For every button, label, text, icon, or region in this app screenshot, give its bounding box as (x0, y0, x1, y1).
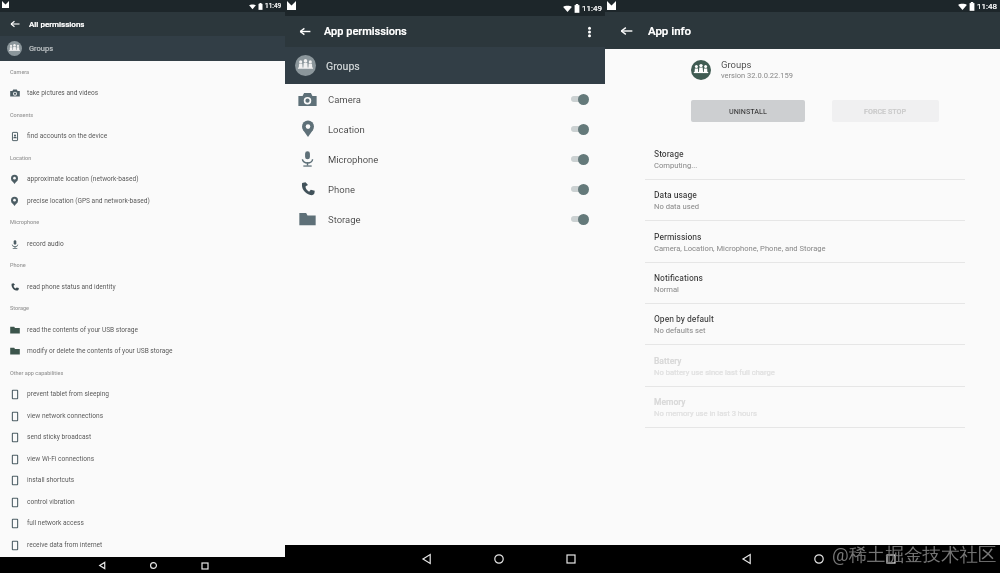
button[interactable]: Back (419, 551, 435, 567)
staticText: App permissions (324, 25, 407, 38)
staticText: Normal (654, 285, 679, 294)
button[interactable]: Home (491, 551, 507, 567)
staticText: Microphone (10, 219, 40, 225)
button[interactable]: record audio (0, 233, 285, 255)
staticText: Location (10, 155, 32, 161)
staticText: All permissions (29, 20, 85, 29)
staticText: read the contents of your USB storage (27, 326, 138, 334)
button[interactable]: Storage (285, 204, 605, 234)
button[interactable]: read phone status and identity (0, 276, 285, 298)
staticText: Phone (10, 262, 26, 268)
button[interactable]: Location (285, 114, 605, 144)
button[interactable]: Navigate up (605, 12, 648, 49)
staticText: Consents (10, 112, 34, 118)
button[interactable]: Battery (605, 346, 1000, 388)
button[interactable]: Navigate up (0, 12, 29, 36)
button[interactable]: Storage permission toggle (566, 208, 600, 230)
button[interactable]: Phone (285, 174, 605, 204)
button[interactable]: Home (148, 560, 159, 571)
staticText: FORCE STOP (864, 107, 907, 115)
staticText: UNINSTALL (729, 107, 767, 115)
staticText: Phone (328, 184, 355, 195)
button[interactable]: Storage (605, 139, 1000, 181)
staticText: Other app capabilities (10, 370, 64, 376)
staticText: Storage (328, 214, 361, 225)
staticText: Data usage (654, 190, 697, 200)
staticText: Microphone (328, 154, 379, 165)
button[interactable]: Back (739, 551, 755, 567)
staticText: Location (328, 124, 365, 135)
button[interactable]: Navigate up (285, 16, 324, 47)
staticText: 11:49 (265, 2, 282, 10)
button[interactable]: view Wi-Fi connections (0, 448, 285, 470)
button[interactable]: Navigate up (0, 12, 285, 36)
button[interactable]: Groups (285, 47, 605, 84)
button[interactable]: Back (97, 560, 108, 571)
button[interactable]: Recent apps (563, 551, 579, 567)
button[interactable]: Camera permission toggle (566, 88, 600, 110)
button[interactable]: prevent tablet from sleeping (0, 383, 285, 405)
staticText: version 32.0.0.22.159 (721, 71, 793, 80)
button[interactable]: install shortcuts (0, 469, 285, 491)
button[interactable]: Camera (285, 84, 605, 114)
staticText: prevent tablet from sleeping (27, 390, 110, 398)
staticText: Battery (654, 356, 682, 366)
button[interactable]: UNINSTALL (691, 100, 805, 122)
staticText: find accounts on the device (27, 132, 108, 140)
staticText: Storage (10, 305, 29, 311)
button[interactable]: Recent apps (199, 560, 210, 571)
staticText: precise location (GPS and network-based) (27, 197, 150, 205)
staticText: full network access (27, 519, 84, 527)
staticText: view Wi-Fi connections (27, 455, 95, 463)
button[interactable]: More options (573, 16, 605, 47)
button[interactable]: find accounts on the device (0, 125, 285, 147)
button[interactable]: Microphone permission toggle (566, 148, 600, 170)
button[interactable]: control vibration (0, 491, 285, 513)
button[interactable]: Notifications (605, 263, 1000, 305)
staticText: No defaults set (654, 326, 706, 335)
button[interactable]: Open by default (605, 304, 1000, 346)
button[interactable]: Groups (0, 36, 285, 61)
button[interactable]: send sticky broadcast (0, 426, 285, 448)
button[interactable]: modify or delete the contents of your US… (0, 340, 285, 362)
button[interactable]: take pictures and videos (0, 82, 285, 104)
button[interactable]: precise location (GPS and network-based) (0, 190, 285, 212)
button[interactable]: view network connections (0, 405, 285, 427)
button[interactable]: approximate location (network-based) (0, 168, 285, 190)
button[interactable]: full network access (0, 512, 285, 534)
staticText: @稀土掘金技术社区 (832, 543, 997, 566)
button[interactable]: Data usage (605, 180, 1000, 222)
button[interactable]: Home (811, 551, 827, 567)
button[interactable]: Memory (605, 387, 1000, 429)
staticText: receive data from internet (27, 541, 103, 549)
button[interactable]: Phone permission toggle (566, 178, 600, 200)
staticText: App info (648, 24, 692, 37)
staticText: 11:48 (977, 2, 997, 11)
staticText: Groups (29, 44, 54, 53)
button[interactable]: Location permission toggle (566, 118, 600, 140)
staticText: install shortcuts (27, 476, 75, 484)
button[interactable]: FORCE STOP (832, 100, 939, 122)
staticText: send sticky broadcast (27, 433, 92, 441)
staticText: Camera, Location, Microphone, Phone, and… (654, 244, 826, 253)
button[interactable]: receive data from internet (0, 534, 285, 556)
staticText: No memory use in last 3 hours (654, 409, 757, 418)
staticText: Groups (721, 59, 752, 70)
staticText: Camera (10, 69, 30, 75)
staticText: modify or delete the contents of your US… (27, 347, 173, 355)
button[interactable]: Microphone (285, 144, 605, 174)
button[interactable]: Recent apps (883, 551, 899, 567)
staticText: No battery use since last full charge (654, 368, 775, 377)
staticText: No data used (654, 202, 699, 211)
button[interactable]: Permissions (605, 222, 1000, 264)
staticText: Camera (328, 94, 361, 105)
staticText: Computing... (654, 161, 698, 170)
staticText: Storage (654, 149, 684, 159)
button[interactable]: read the contents of your USB storage (0, 319, 285, 341)
staticText: read phone status and identity (27, 283, 116, 291)
staticText: Groups (326, 60, 360, 72)
staticText: record audio (27, 240, 64, 248)
staticText: Memory (654, 397, 686, 407)
staticText: 11:49 (582, 4, 602, 13)
staticText: Open by default (654, 314, 714, 324)
